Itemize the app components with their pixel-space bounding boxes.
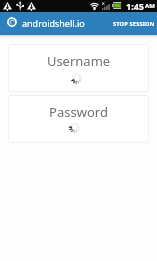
button[interactable]: STOP SESSION	[111, 18, 157, 30]
staticText: Username	[8, 52, 149, 70]
staticText: Password	[8, 103, 149, 121]
button[interactable]: androidshell.io logo	[7, 17, 17, 27]
staticText: AM	[145, 2, 155, 10]
staticText: 1:45	[126, 0, 144, 12]
button[interactable]: Password	[8, 95, 149, 143]
button[interactable]: Username	[8, 44, 149, 92]
staticText: STOP SESSION	[113, 20, 155, 28]
staticText: androidshell.io	[22, 17, 85, 29]
